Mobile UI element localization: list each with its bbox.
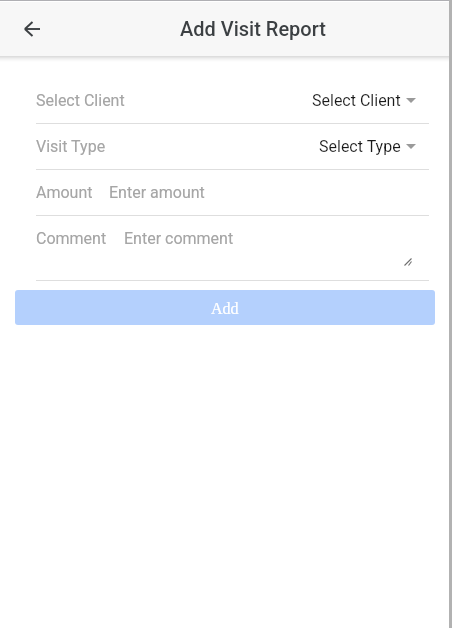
staticText: Add [211, 300, 239, 318]
staticText: Select Client [312, 91, 401, 110]
staticText: Enter comment [124, 229, 234, 248]
staticText: Enter amount [109, 183, 205, 202]
button[interactable]: Select Client [312, 91, 416, 110]
button[interactable]: Select Type [319, 137, 416, 156]
staticText: Select Type [319, 137, 401, 156]
staticText: Select Client [36, 91, 125, 110]
button[interactable]: Add [15, 290, 435, 325]
staticText: Comment [36, 229, 107, 248]
staticText: Amount [36, 183, 93, 202]
staticText: Visit Type [36, 137, 106, 156]
button[interactable]: Back [0, 2, 56, 56]
staticText: Add Visit Report [180, 17, 326, 40]
